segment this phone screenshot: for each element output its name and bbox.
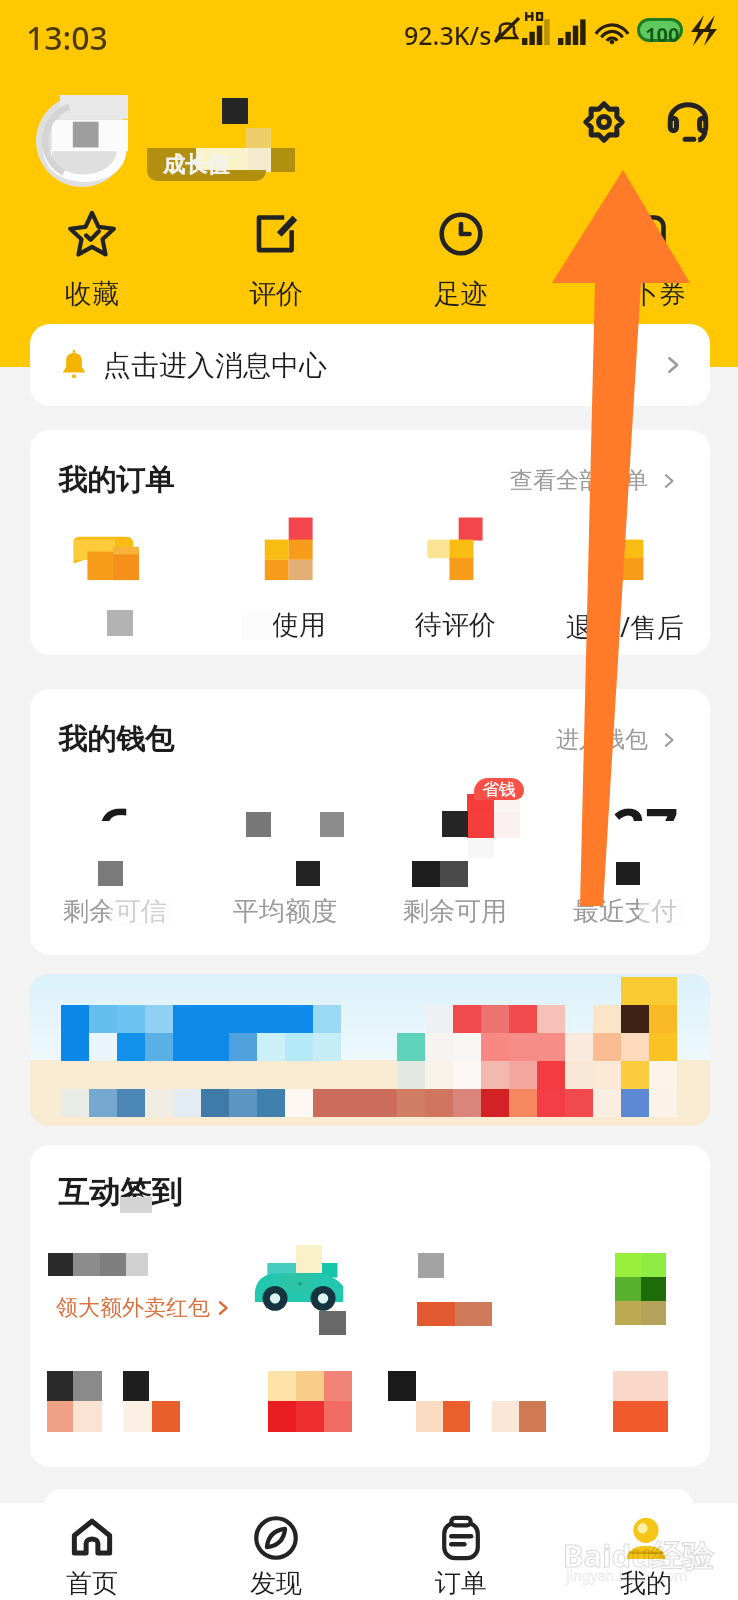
button[interactable]: 卡卜券	[553, 211, 738, 311]
staticText: 点击进入消息中心	[103, 348, 327, 383]
button[interactable]: 评价	[184, 211, 368, 311]
button[interactable]: 退款/售后	[540, 512, 710, 645]
staticText: 剩余可用	[403, 895, 507, 928]
staticText: 足迹	[434, 277, 488, 311]
button[interactable]: 首页	[0, 1503, 184, 1600]
button[interactable]: 点击进入消息中心	[30, 324, 710, 406]
staticText: 领大额外卖红包	[56, 1294, 210, 1322]
staticText: 13:03	[26, 16, 108, 60]
button[interactable]: 我的	[553, 1503, 738, 1600]
button[interactable]: 27	[540, 779, 710, 928]
button[interactable]: 查看全部订单	[510, 466, 680, 495]
staticText: 查看全部订单	[510, 466, 648, 495]
staticText: 92.3K/s	[404, 18, 492, 52]
staticText: 待使用	[245, 608, 326, 642]
staticText: 进入钱包	[556, 725, 648, 754]
staticText: 我的	[620, 1567, 672, 1600]
button[interactable]	[30, 512, 200, 638]
staticText: 成长值	[163, 151, 229, 179]
staticText: 6	[98, 788, 132, 867]
button[interactable]: 收藏	[0, 211, 184, 311]
staticText: 互动签到	[58, 1173, 182, 1212]
button[interactable]: 足迹	[368, 211, 553, 311]
button[interactable]: 进入钱包	[556, 725, 680, 754]
button[interactable]: 平均额度	[200, 779, 370, 928]
staticText: 收藏	[65, 277, 119, 311]
button[interactable]: 待评价	[370, 512, 540, 642]
button[interactable]	[30, 974, 710, 1126]
staticText: Baidu经验	[563, 1534, 714, 1576]
staticText: 100	[645, 21, 680, 48]
staticText: 我的订单	[58, 462, 174, 499]
button[interactable]: 我的钱包	[30, 689, 710, 955]
staticText: 待评价	[415, 608, 496, 642]
staticText: 首页	[66, 1567, 118, 1600]
staticText: 省钱	[482, 779, 516, 800]
button[interactable]: 待使用	[200, 512, 370, 642]
staticText: 最近支付	[573, 895, 677, 928]
button[interactable]: 客服 Customer service	[656, 90, 720, 154]
staticText: 订单	[435, 1567, 487, 1600]
staticText: 平均额度	[233, 895, 337, 928]
staticText: 评价	[249, 277, 303, 311]
staticText: 卡卜券	[605, 277, 686, 311]
button[interactable]: 省钱	[370, 779, 540, 928]
button[interactable]: 发现	[184, 1503, 368, 1600]
staticText: 剩余可信	[63, 895, 167, 928]
staticText: 我的钱包	[58, 721, 174, 758]
button[interactable]: 互动签到	[30, 1145, 710, 1467]
staticText: 退款/售后	[566, 608, 685, 645]
button[interactable]: 我的订单	[30, 430, 710, 655]
staticText: 发现	[250, 1567, 302, 1600]
button[interactable]: 设置 Settings	[572, 90, 636, 154]
staticText: jingyan.baidu.com	[566, 1566, 688, 1585]
button[interactable]: 6	[30, 779, 200, 928]
button[interactable]: 订单	[368, 1503, 553, 1600]
staticText: 27	[612, 788, 679, 867]
